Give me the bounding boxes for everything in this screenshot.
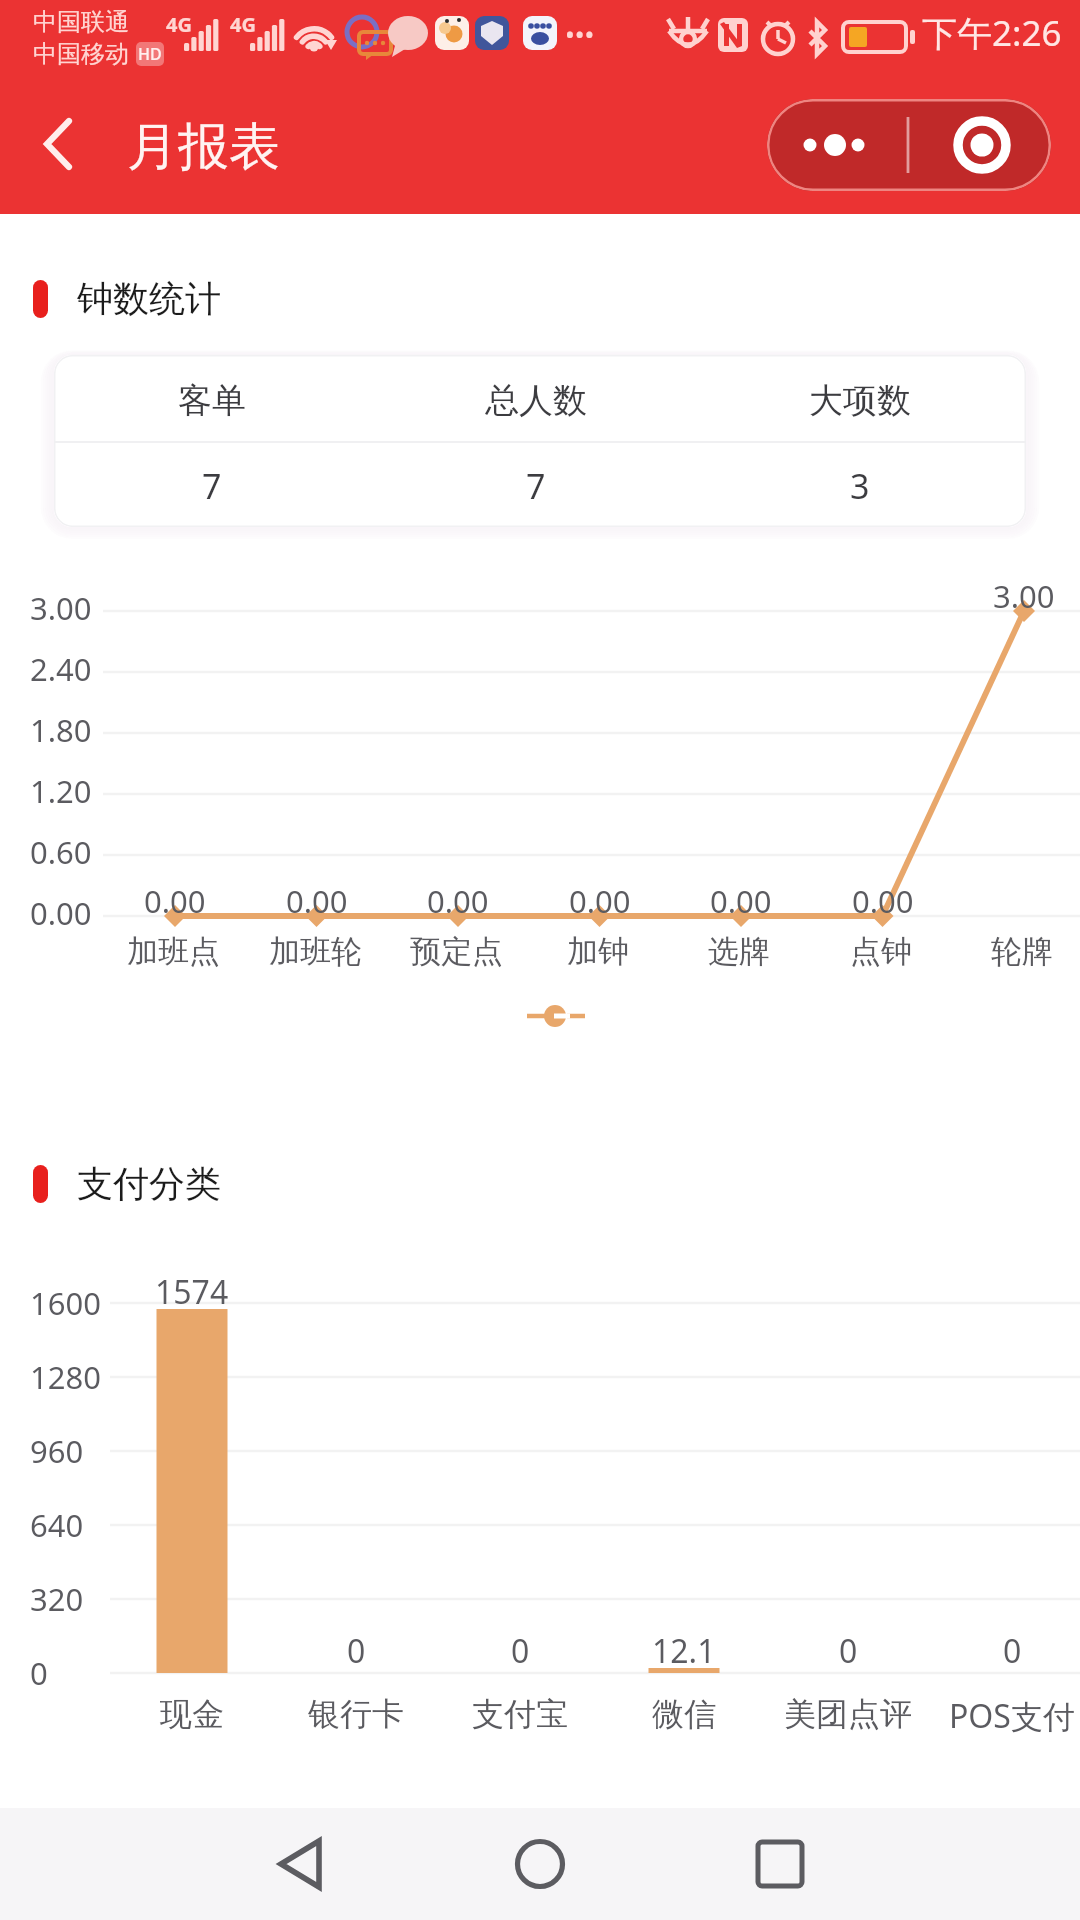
staticText: 0 (511, 1629, 530, 1673)
staticText: 0.00 (286, 880, 348, 922)
staticText: 0.00 (710, 880, 772, 922)
staticText: 3.00 (993, 575, 1055, 617)
staticText: 4G (166, 11, 192, 38)
staticText: 0 (1003, 1629, 1022, 1673)
staticText: 7 (526, 463, 546, 509)
staticText: 1574 (155, 1270, 229, 1314)
staticText: 支付分类 (77, 1161, 221, 1206)
button[interactable]: Home (480, 1808, 600, 1920)
button[interactable]: 更多 / 关闭 (767, 99, 1051, 191)
staticText: 中国联通 (33, 7, 129, 37)
staticText: 预定点 (410, 932, 503, 971)
staticText: 0 (839, 1629, 858, 1673)
staticText: 320 (30, 1578, 84, 1620)
button[interactable]: 钟数统计 (0, 276, 1080, 321)
staticText: 大项数 (809, 379, 911, 422)
staticText: 月报表 (127, 115, 280, 179)
button[interactable]: Back (240, 1808, 360, 1920)
staticText: 现金 (160, 1694, 224, 1734)
staticText: 3 (850, 463, 870, 509)
staticText: 加班点 (127, 932, 220, 971)
button[interactable]: 支付分类 (0, 1161, 1080, 1206)
staticText: 7 (202, 463, 222, 509)
staticText: 总人数 (485, 379, 587, 422)
button[interactable]: 客单 (54, 355, 1026, 527)
button[interactable]: Recents (720, 1808, 840, 1920)
staticText: 1600 (30, 1282, 101, 1324)
staticText: 2.40 (30, 648, 92, 690)
staticText: 加钟 (567, 932, 629, 971)
staticText: 0 (30, 1652, 48, 1694)
staticText: 美团点评 (784, 1694, 912, 1734)
staticText: 640 (30, 1504, 84, 1546)
staticText: 轮牌 (991, 932, 1053, 971)
staticText: 0.00 (144, 880, 206, 922)
staticText: 下午2:26 (922, 9, 1062, 57)
staticText: 0.00 (852, 880, 914, 922)
staticText: 中国移动 (33, 39, 129, 69)
staticText: 0.00 (427, 880, 489, 922)
staticText: 0.00 (30, 892, 92, 934)
staticText: 4G (230, 11, 256, 38)
staticText: HD (138, 43, 162, 65)
staticText: 0 (347, 1629, 366, 1673)
staticText: 支付宝 (472, 1694, 568, 1734)
staticText: 点钟 (850, 932, 912, 971)
staticText: 1.80 (30, 709, 92, 751)
staticText: 加班轮 (269, 932, 362, 971)
staticText: 0.60 (30, 831, 92, 873)
staticText: 960 (30, 1430, 84, 1472)
staticText: 0.00 (569, 880, 631, 922)
staticText: 银行卡 (308, 1694, 404, 1734)
button[interactable]: 返回 (8, 94, 108, 194)
staticText: 客单 (178, 379, 246, 422)
staticText: ••• (565, 16, 595, 51)
staticText: 微信 (652, 1694, 716, 1734)
staticText: 1280 (30, 1356, 101, 1398)
staticText: 选牌 (708, 932, 770, 971)
staticText: POS支付 (949, 1694, 1075, 1738)
staticText: 钟数统计 (77, 276, 221, 321)
staticText: 1.20 (30, 770, 92, 812)
staticText: 3.00 (30, 587, 92, 629)
staticText: 12.1 (652, 1629, 716, 1673)
